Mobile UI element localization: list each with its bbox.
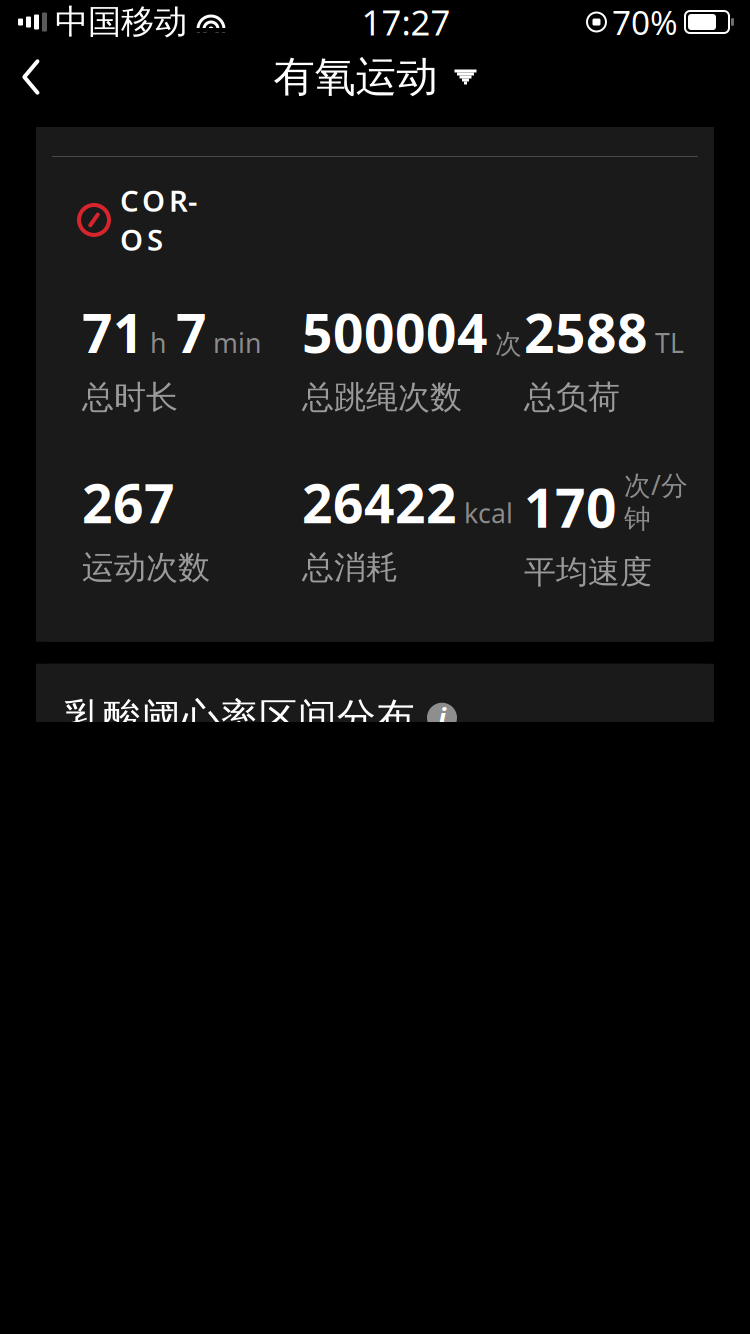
staticText: 17:27 xyxy=(361,0,450,45)
staticText: 乳酸阈心率区间分布 xyxy=(64,694,415,741)
staticText: 2588 xyxy=(524,297,648,368)
staticText: 500004 xyxy=(302,297,488,368)
staticText: COROS xyxy=(120,181,197,259)
staticText: 平均速度 xyxy=(524,552,652,592)
staticText: 267 xyxy=(82,467,175,538)
staticText: 总跳绳次数 xyxy=(302,378,462,417)
staticText: 26422 xyxy=(302,467,457,538)
staticText: i xyxy=(438,700,446,735)
staticText: 总负荷 xyxy=(524,378,620,417)
staticText: h xyxy=(150,325,166,360)
staticText: 总消耗 xyxy=(302,548,398,587)
button[interactable]: 乳酸阈心率区间分布 xyxy=(36,696,471,740)
staticText: 170 xyxy=(524,472,617,542)
staticText: 7 xyxy=(176,297,207,368)
staticText: 总时长 xyxy=(82,378,178,417)
staticText: 70% xyxy=(612,0,678,44)
staticText: kcal xyxy=(464,495,513,530)
staticText: 71 xyxy=(82,297,144,368)
staticText: TL xyxy=(655,325,684,360)
staticText: 有氧运动 xyxy=(273,52,437,102)
button[interactable]: 返回 xyxy=(0,44,62,110)
staticText: 中国移动 xyxy=(55,1,187,42)
staticText: min xyxy=(213,325,261,360)
staticText: 次 xyxy=(495,328,522,361)
button[interactable]: 有氧运动 xyxy=(263,44,486,110)
staticText: 次/分钟 xyxy=(624,467,688,535)
staticText: 运动次数 xyxy=(82,548,210,587)
